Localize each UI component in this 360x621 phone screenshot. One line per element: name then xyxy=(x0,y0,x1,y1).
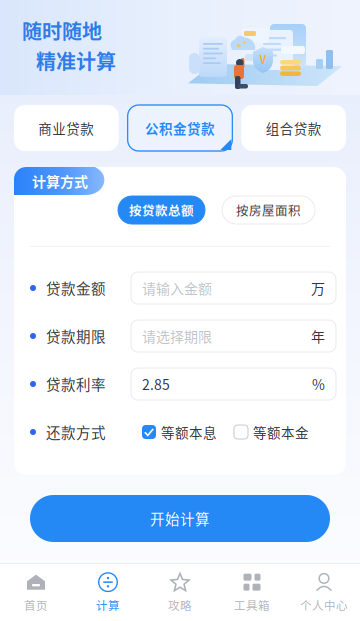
staticText: 精准计算 xyxy=(36,46,116,75)
staticText: 计算方式 xyxy=(32,171,88,191)
staticText: 请选择期限 xyxy=(142,326,212,346)
staticText: 贷款期限 xyxy=(46,325,106,346)
staticText: 还款方式 xyxy=(46,421,106,442)
staticText: 首页 xyxy=(24,597,48,613)
staticText: 商业贷款 xyxy=(38,118,94,138)
button[interactable]: 开始计算 xyxy=(30,495,330,542)
staticText: V xyxy=(259,51,266,67)
staticText: 计算 xyxy=(96,597,120,613)
button[interactable]: 等额本息 xyxy=(142,422,217,442)
staticText: 万 xyxy=(311,278,325,298)
button[interactable]: 攻略 xyxy=(144,564,216,621)
staticText: 开始计算 xyxy=(150,508,210,529)
button[interactable]: 工具箱 xyxy=(216,564,288,621)
staticText: 攻略 xyxy=(168,597,192,613)
staticText: 年 xyxy=(311,326,325,346)
staticText: 公积金贷款 xyxy=(145,118,215,138)
staticText: 按房屋面积 xyxy=(236,201,301,219)
staticText: 等额本金 xyxy=(253,422,309,442)
staticText: 组合贷款 xyxy=(266,118,322,138)
staticText: 2.85 xyxy=(142,374,170,394)
button[interactable]: 2.85 xyxy=(131,368,336,400)
button[interactable]: 个人中心 xyxy=(288,564,360,621)
button[interactable]: 计算 xyxy=(72,564,144,621)
staticText: 请输入金额 xyxy=(142,278,212,298)
staticText: 个人中心 xyxy=(300,597,348,613)
staticText: % xyxy=(312,374,325,394)
button[interactable]: 按贷款总额 xyxy=(118,196,205,224)
staticText: 按贷款总额 xyxy=(129,201,194,219)
staticText: 随时随地 xyxy=(22,16,102,45)
button[interactable]: 首页 xyxy=(0,564,72,621)
staticText: 贷款金额 xyxy=(46,277,106,298)
button[interactable]: 商业贷款 xyxy=(14,105,119,151)
button[interactable]: 请输入金额 xyxy=(131,272,336,304)
staticText: 工具箱 xyxy=(234,597,270,613)
staticText: 等额本息 xyxy=(161,422,217,442)
staticText: 贷款利率 xyxy=(46,373,106,394)
button[interactable]: 公积金贷款 xyxy=(128,105,232,151)
button[interactable]: 按房屋面积 xyxy=(222,196,315,224)
button[interactable]: 组合贷款 xyxy=(241,105,346,151)
button[interactable]: 请选择期限 xyxy=(131,320,336,352)
button[interactable]: 等额本金 xyxy=(234,422,309,442)
